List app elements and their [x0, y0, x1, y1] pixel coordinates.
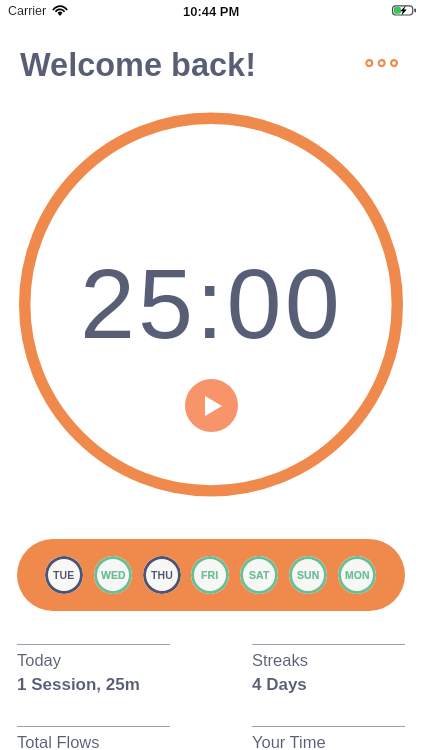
button[interactable]: FRI	[191, 556, 229, 594]
button[interactable]: Start timer	[185, 379, 238, 432]
staticText: THU	[151, 569, 173, 581]
staticText: WED	[101, 569, 126, 581]
staticText: SUN	[297, 569, 320, 581]
staticText: SAT	[249, 569, 270, 581]
staticText: Today	[17, 651, 62, 669]
button[interactable]: Today	[17, 644, 170, 694]
button[interactable]: WED	[94, 556, 132, 594]
button[interactable]: More options	[352, 41, 410, 85]
staticText: Welcome back!	[20, 47, 257, 83]
staticText: 25:00	[80, 248, 343, 359]
button[interactable]: Your Time	[252, 726, 405, 750]
button[interactable]: Streaks	[252, 644, 405, 694]
button[interactable]: MON	[338, 556, 376, 594]
staticText: FRI	[201, 569, 219, 581]
staticText: Carrier	[8, 4, 47, 18]
button[interactable]: TUE	[45, 556, 83, 594]
button[interactable]: SUN	[289, 556, 327, 594]
button[interactable]: Total Flows	[17, 726, 170, 750]
staticText: TUE	[53, 569, 75, 581]
staticText: Your Time	[252, 733, 326, 750]
button[interactable]: THU	[143, 556, 181, 594]
staticText: 1 Session, 25m	[17, 675, 140, 694]
staticText: 4 Days	[252, 675, 307, 694]
staticText: 10:44 PM	[183, 4, 240, 19]
staticText: Streaks	[252, 651, 308, 669]
staticText: Total Flows	[17, 733, 100, 750]
button[interactable]: SAT	[240, 556, 278, 594]
staticText: MON	[345, 569, 370, 581]
